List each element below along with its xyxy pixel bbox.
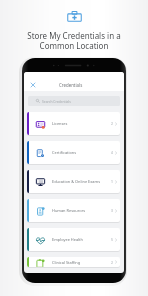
button[interactable]: Certifications xyxy=(27,141,120,164)
staticText: Licenses xyxy=(52,121,111,126)
button[interactable]: Human Resources xyxy=(27,199,120,222)
button[interactable]: Search Credentials xyxy=(28,96,120,106)
button[interactable]: Education & Online Exams xyxy=(27,170,120,193)
staticText: Search Credentials xyxy=(42,99,71,103)
staticText: 5 xyxy=(111,237,113,242)
staticText: 4 xyxy=(111,150,113,155)
staticText: 1 xyxy=(111,179,113,184)
button[interactable]: Close xyxy=(28,80,37,89)
staticText: Clinical Staffing xyxy=(52,260,111,265)
staticText: Credentials xyxy=(59,82,83,88)
staticText: Employee Health xyxy=(52,237,111,242)
staticText: 2 xyxy=(111,260,113,265)
staticText: Education & Online Exams xyxy=(52,179,111,184)
button[interactable]: Clinical Staffing xyxy=(27,257,120,267)
button[interactable]: Licenses xyxy=(27,112,120,135)
button[interactable]: Employee Health xyxy=(27,228,120,251)
staticText: 3 xyxy=(111,208,113,213)
staticText: Store My Credentials in a Common Locatio… xyxy=(0,30,148,51)
staticText: 2 xyxy=(111,121,113,126)
staticText: Human Resources xyxy=(52,208,111,213)
staticText: Certifications xyxy=(52,150,111,155)
